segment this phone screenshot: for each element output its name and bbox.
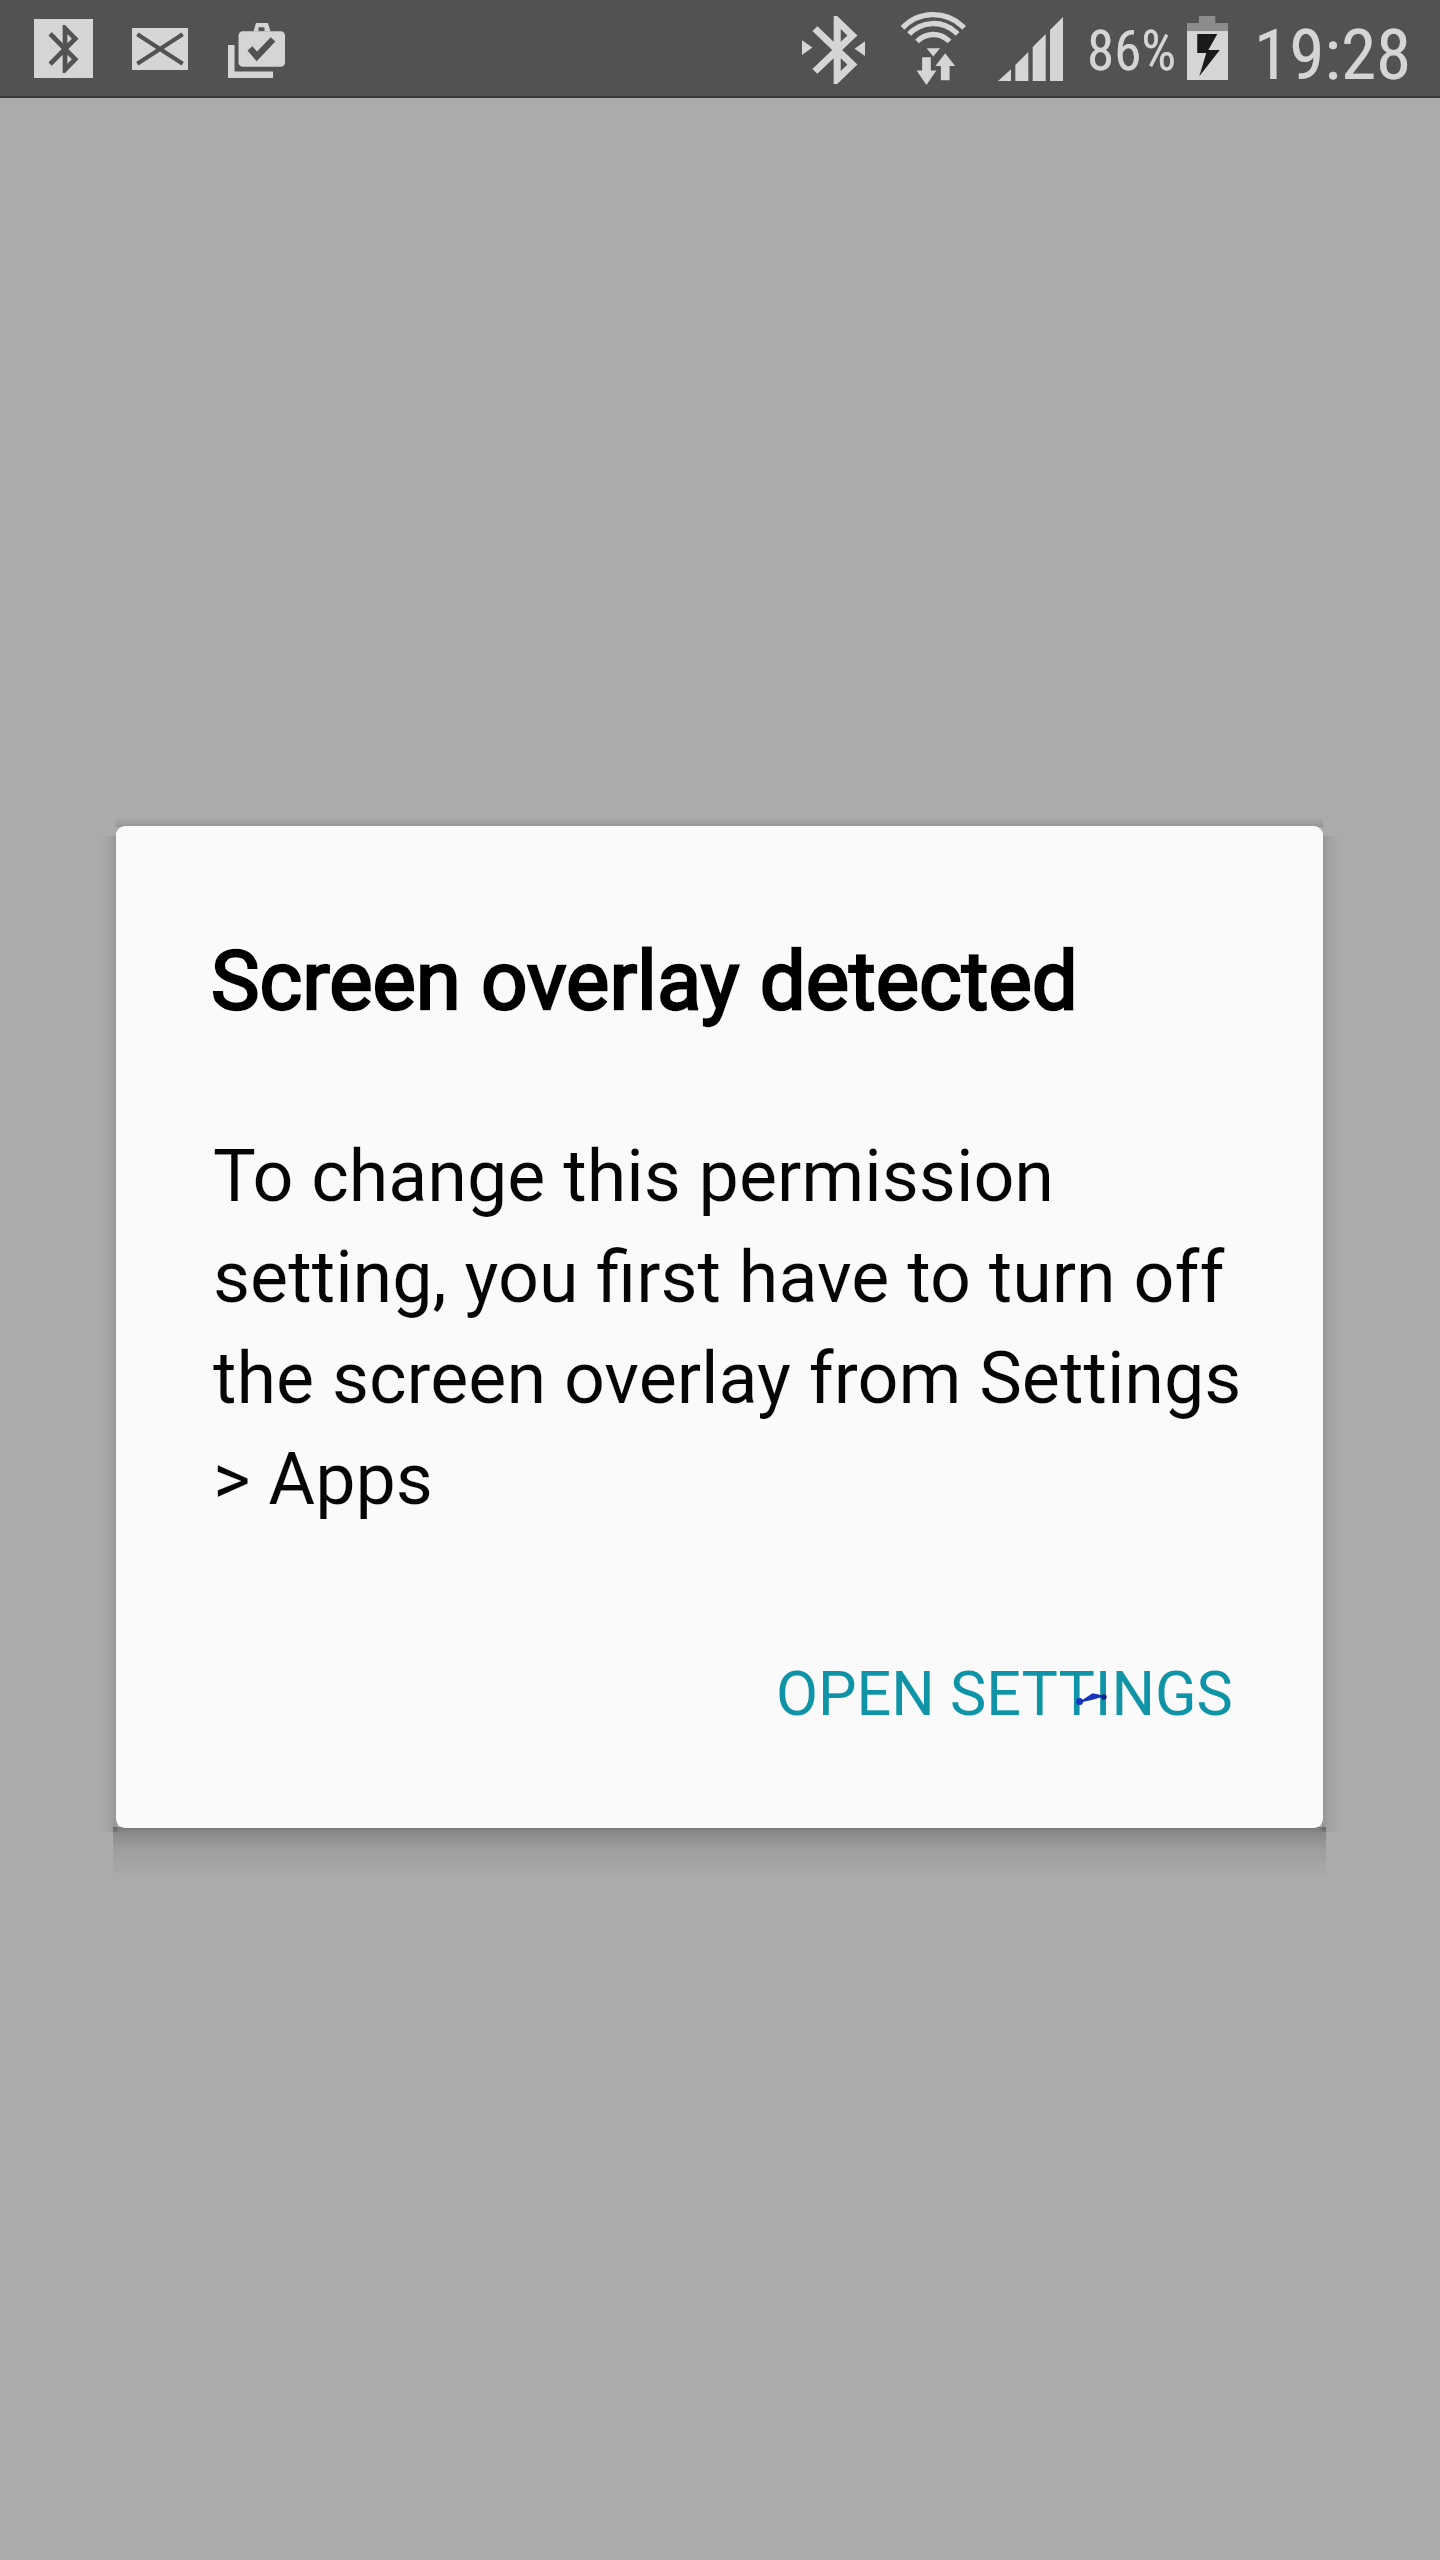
other: Mobile signal (998, 17, 1063, 81)
staticText: 19:28 (1254, 13, 1412, 96)
other: Bluetooth connected (34, 19, 93, 78)
staticText: 86% (1087, 19, 1177, 83)
staticText: OPEN SETTINGS (776, 1658, 1233, 1730)
other: Battery 86 percent, charging (1187, 16, 1228, 80)
button[interactable]: OPEN SETTINGS (716, 1612, 1293, 1776)
other: Unread email (132, 28, 188, 70)
other: Bluetooth (802, 16, 865, 84)
other: Wi-Fi (900, 12, 967, 85)
staticText: Screen overlay detected (211, 933, 1078, 1029)
staticText: To change this permission setting, you f… (213, 1134, 1258, 1521)
other: Tasks (228, 22, 285, 78)
